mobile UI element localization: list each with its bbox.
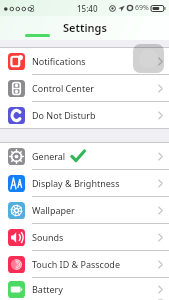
button[interactable]: Do Not Disturb <box>0 102 169 128</box>
staticText: Battery <box>32 283 63 295</box>
button[interactable]: Sounds <box>0 224 169 250</box>
staticText: Do Not Disturb <box>32 109 96 121</box>
button[interactable]: General <box>0 143 169 169</box>
button[interactable]: Wallpaper <box>0 197 169 223</box>
staticText: Touch ID & Passcode <box>32 258 120 270</box>
staticText: Control Center <box>32 82 94 94</box>
staticText: General <box>32 150 66 162</box>
staticText: 69% <box>135 3 149 13</box>
staticText: Sounds <box>32 231 64 243</box>
staticText: Wallpaper <box>32 204 75 216</box>
staticText: Notifications <box>32 55 86 67</box>
button[interactable]: Notifications <box>0 48 169 74</box>
staticText: Settings <box>63 20 107 35</box>
staticText: Display & Brightness <box>32 177 120 189</box>
button[interactable]: Battery <box>0 278 169 300</box>
button[interactable]: Display & Brightness <box>0 170 169 196</box>
staticText: 3 <box>30 3 35 14</box>
button[interactable]: Touch ID & Passcode <box>0 251 169 277</box>
staticText: 15:40 <box>77 3 98 14</box>
button[interactable]: Control Center <box>0 75 169 101</box>
